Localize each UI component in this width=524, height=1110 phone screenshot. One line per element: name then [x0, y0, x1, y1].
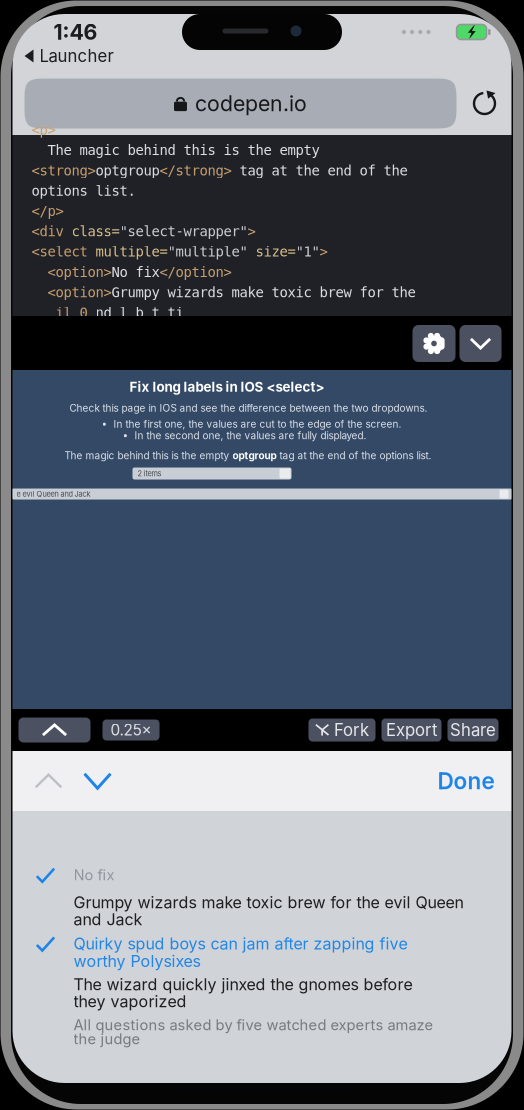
staticText: optgroup	[95, 162, 159, 179]
button[interactable]: Quirky spud boys can jam after zapping f…	[12, 935, 511, 970]
staticText: "1"	[295, 244, 319, 260]
staticText: 0.25×	[110, 721, 151, 739]
button[interactable]: codepen.io	[24, 78, 456, 128]
button[interactable]: The wizard quickly jinxed the gnomes bef…	[12, 976, 511, 1010]
staticText: No fix	[73, 866, 114, 884]
staticText: optgroup	[232, 449, 276, 462]
staticText: they vaporized	[73, 992, 186, 1011]
staticText: "select-wrapper"	[119, 223, 247, 239]
staticText: <option>	[31, 284, 111, 300]
staticText: The wizard quickly jinxed the gnomes bef…	[73, 975, 412, 994]
staticText: </strong>	[159, 162, 231, 179]
staticText: e evil Queen and Jack	[16, 490, 90, 498]
staticText: and Jack	[73, 910, 142, 929]
button[interactable]: Export	[381, 718, 441, 741]
staticText: <div	[31, 223, 71, 239]
staticText: tag at the end of the	[231, 162, 407, 179]
staticText: il 0	[31, 305, 95, 321]
button[interactable]: Share	[447, 718, 498, 741]
staticText: Done	[437, 767, 494, 795]
staticText: worthy Polysixes	[73, 952, 200, 971]
button[interactable]: Collapse editor	[459, 325, 501, 362]
button[interactable]: Fork	[308, 718, 375, 741]
staticText: Grumpy wizards make toxic brew for the	[111, 284, 415, 300]
button[interactable]: All questions asked by five watched expe…	[12, 1018, 511, 1046]
button[interactable]: Previous field	[24, 752, 72, 810]
staticText: codepen.io	[195, 91, 307, 116]
button[interactable]: Settings	[412, 325, 455, 362]
staticText: the judge	[73, 1030, 140, 1048]
staticText: nd l b t ti	[95, 305, 183, 321]
staticText: Export	[386, 720, 437, 740]
staticText: >	[319, 244, 327, 260]
staticText: </p>	[31, 203, 63, 219]
staticText: 1:46	[53, 19, 97, 45]
staticText: All questions asked by five watched expe…	[73, 1016, 433, 1034]
staticText: Fork	[334, 720, 369, 740]
staticText: >	[247, 223, 255, 239]
staticText: options list.	[31, 183, 135, 199]
staticText: <strong>	[31, 162, 95, 179]
staticText: tag at the end of the options list.	[276, 449, 431, 462]
staticText: The magic behind this is the empty	[31, 142, 319, 158]
staticText: The magic behind this is the empty	[64, 449, 232, 462]
button[interactable]: Grumpy wizards make toxic brew for the e…	[12, 894, 511, 928]
staticText: Fix long labels in IOS <select>	[129, 379, 324, 395]
staticText: • In the first one, the values are cut t…	[101, 418, 401, 430]
staticText: multiple=	[95, 244, 167, 260]
button[interactable]: Reload	[469, 78, 499, 128]
button[interactable]: Done	[429, 752, 502, 810]
staticText: Quirky spud boys can jam after zapping f…	[73, 934, 407, 953]
staticText: <select	[31, 244, 95, 260]
staticText: No fix	[111, 264, 159, 280]
staticText: • In the second one, the values are full…	[122, 429, 366, 442]
button[interactable]: 0.25×	[102, 719, 159, 740]
staticText: Grumpy wizards make toxic brew for the e…	[73, 893, 463, 912]
staticText: <option>	[31, 264, 111, 280]
button[interactable]: Expand editor	[18, 717, 90, 742]
staticText: 2 items	[137, 469, 161, 478]
button[interactable]: No fix	[12, 868, 511, 882]
staticText: Check this page in IOS and see the diffe…	[69, 402, 427, 414]
staticText: size=	[255, 244, 295, 260]
staticText: Launcher	[39, 46, 113, 66]
button[interactable]: Next field	[73, 752, 121, 810]
staticText: Share	[450, 720, 496, 740]
staticText: <p>	[31, 122, 55, 138]
staticText: "multiple"	[167, 244, 255, 260]
staticText: class=	[71, 223, 119, 239]
staticText: </option>	[159, 264, 231, 280]
